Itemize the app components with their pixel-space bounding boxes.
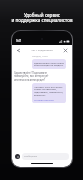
staticText: Сегодня, 13:04 bbox=[32, 55, 48, 58]
staticText: Сообщение bbox=[24, 155, 37, 158]
staticText: Условия ипотеки bbox=[34, 98, 54, 101]
button[interactable]: Back bbox=[15, 47, 21, 53]
button[interactable]: Сообщение bbox=[22, 153, 69, 160]
button[interactable]: Attach bbox=[15, 154, 20, 159]
staticText: Здравствуйте! Мне нужна консультация по … bbox=[34, 61, 64, 67]
button[interactable]: Close bbox=[62, 47, 68, 53]
staticText: Удобный сервис и поддержка специалистов bbox=[11, 12, 73, 24]
staticText: Здравствуйте! Подскажите, пожалуйста, ва… bbox=[14, 71, 49, 81]
staticText: 9:41 bbox=[16, 39, 22, 43]
staticText: Ипотека. Хочу посчитать ставку на кварти… bbox=[34, 85, 64, 97]
staticText: Чат с поддержкой bbox=[31, 48, 53, 51]
